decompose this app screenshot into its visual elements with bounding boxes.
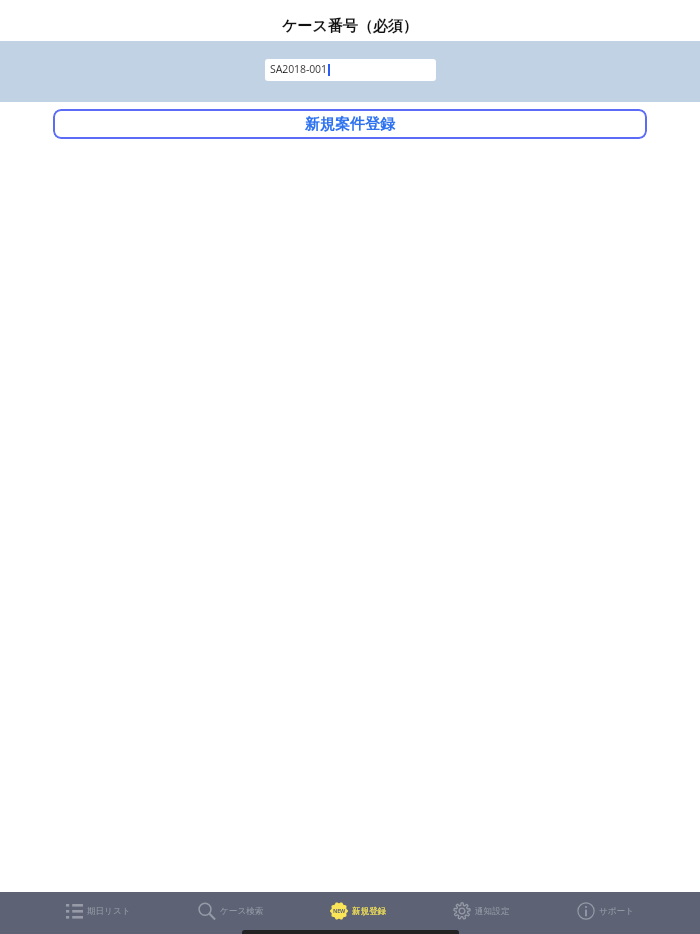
other: Notification settings [453, 902, 471, 920]
staticText: NEW [333, 907, 346, 914]
button[interactable]: 新規案件登録 [53, 109, 647, 139]
other: Support [577, 902, 595, 920]
button[interactable]: New registration [330, 890, 387, 932]
button[interactable]: Notification settings [453, 890, 510, 932]
button[interactable]: Due date list [66, 890, 131, 932]
staticText: SA2018-001 [270, 62, 327, 76]
staticText: サポート [599, 906, 634, 917]
staticText: 通知設定 [475, 906, 510, 917]
button[interactable]: Case search [198, 890, 264, 932]
staticText: ケース番号（必須） [282, 17, 418, 36]
button[interactable]: ケース番号入力 [265, 59, 436, 81]
staticText: 期日リスト [87, 906, 131, 917]
other: Case search [198, 903, 216, 920]
other: Due date list [66, 904, 83, 919]
button[interactable]: Support [577, 890, 634, 932]
staticText: 新規案件登録 [305, 115, 395, 134]
staticText: ケース検索 [220, 906, 264, 917]
staticText: 新規登録 [352, 906, 387, 917]
other: New registration [330, 902, 348, 920]
